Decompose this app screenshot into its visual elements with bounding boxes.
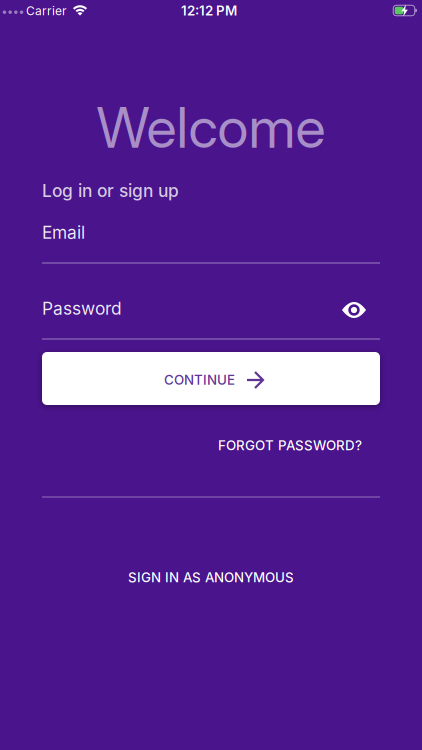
- button[interactable]: FORGOT PASSWORD?: [202, 427, 378, 463]
- staticText: Carrier: [26, 4, 67, 18]
- button[interactable]: CONTINUE: [42, 352, 380, 405]
- staticText: Log in or sign up: [42, 180, 179, 201]
- button[interactable]: SIGN IN AS ANONYMOUS: [112, 559, 310, 595]
- staticText: Welcome: [96, 93, 325, 161]
- staticText: CONTINUE: [164, 372, 235, 388]
- button[interactable]: Show password: [341, 300, 367, 320]
- staticText: Email: [42, 222, 85, 243]
- staticText: FORGOT PASSWORD?: [218, 438, 362, 453]
- staticText: Password: [42, 298, 122, 319]
- staticText: 12:12 PM: [181, 3, 237, 18]
- staticText: SIGN IN AS ANONYMOUS: [128, 570, 294, 585]
